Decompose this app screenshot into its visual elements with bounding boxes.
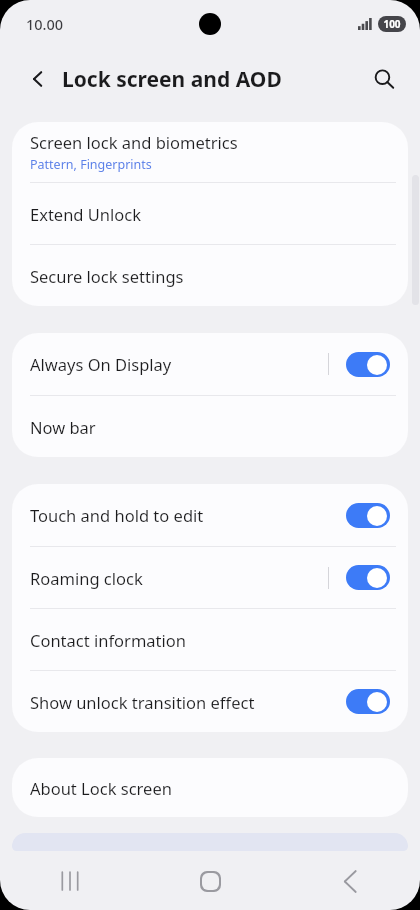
- staticText: Touch and hold to edit: [30, 504, 204, 526]
- button[interactable]: Back: [280, 852, 420, 910]
- staticText: Screen lock and biometrics: [30, 131, 238, 153]
- button[interactable]: Touch and hold to edit: [346, 503, 390, 528]
- button[interactable]: Secure lock settings: [12, 245, 408, 306]
- staticText: Extend Unlock: [30, 203, 142, 225]
- staticText: Contact information: [30, 629, 186, 651]
- staticText: 10.00: [26, 14, 64, 34]
- button[interactable]: Contact information: [12, 609, 408, 670]
- staticText: Always On Display: [30, 353, 172, 375]
- button[interactable]: Roaming clock: [12, 547, 408, 608]
- button[interactable]: Recent apps: [0, 852, 140, 910]
- staticText: Show unlock transition effect: [30, 691, 255, 713]
- button[interactable]: Always On Display: [346, 352, 390, 377]
- button[interactable]: Always On Display: [12, 333, 408, 395]
- button[interactable]: Extend Unlock: [12, 183, 408, 244]
- button[interactable]: Touch and hold to edit: [12, 484, 408, 546]
- button[interactable]: Show unlock transition effect: [346, 689, 390, 714]
- button[interactable]: Show unlock transition effect: [12, 671, 408, 732]
- staticText: Secure lock settings: [30, 265, 184, 287]
- button[interactable]: Back: [18, 59, 58, 99]
- staticText: Pattern, Fingerprints: [30, 156, 152, 173]
- staticText: Lock screen and AOD: [62, 65, 282, 94]
- staticText: Now bar: [30, 416, 96, 438]
- button[interactable]: Search: [364, 59, 404, 99]
- staticText: 100: [383, 17, 401, 31]
- staticText: About Lock screen: [30, 777, 172, 799]
- button[interactable]: Roaming clock: [346, 565, 390, 590]
- button[interactable]: About Lock screen: [12, 758, 408, 817]
- button[interactable]: Now bar: [12, 396, 408, 457]
- staticText: Roaming clock: [30, 567, 143, 589]
- button[interactable]: Screen lock and biometrics: [12, 122, 408, 182]
- button[interactable]: Home: [140, 852, 280, 910]
